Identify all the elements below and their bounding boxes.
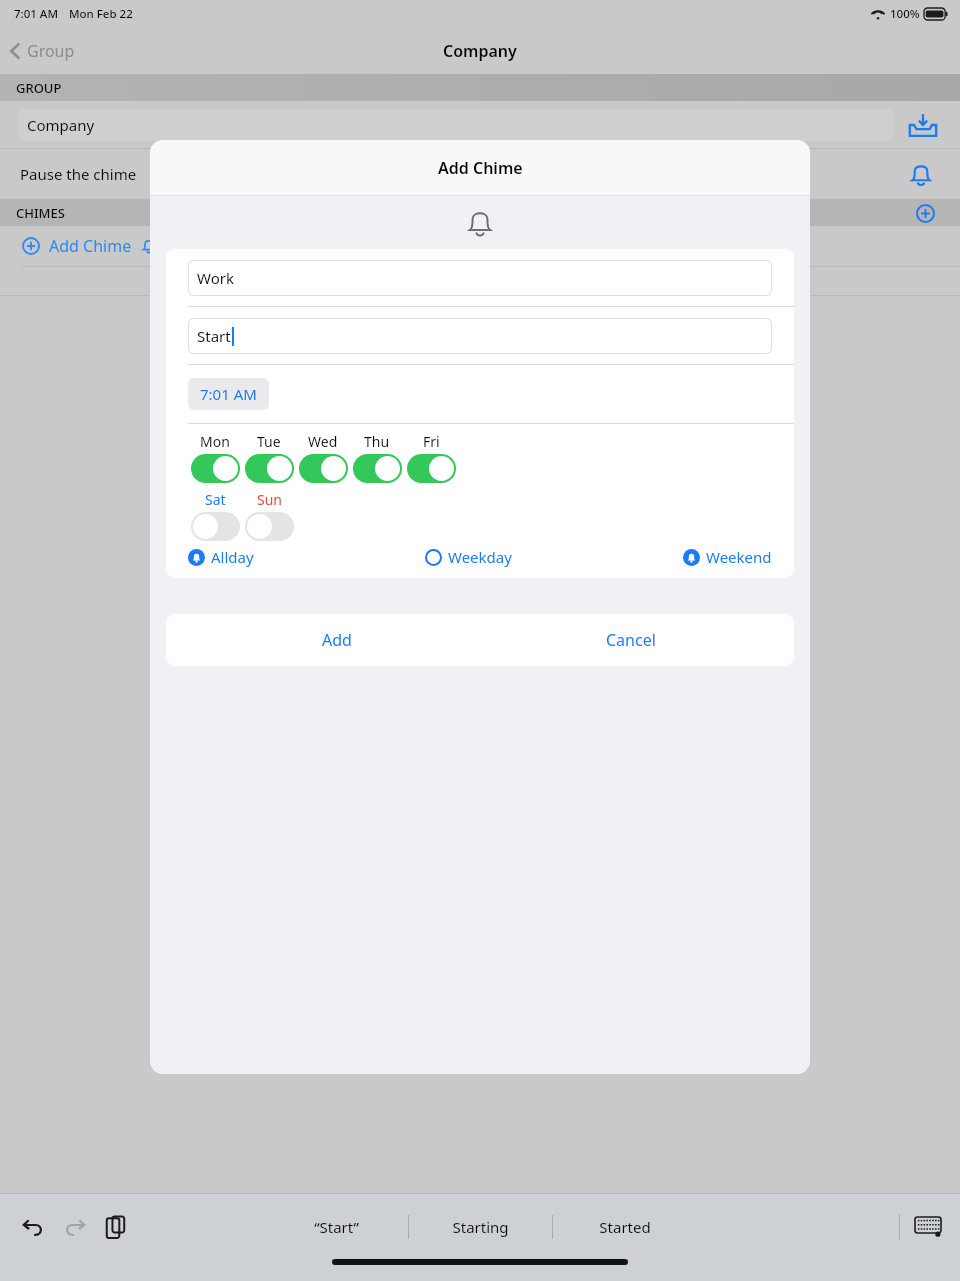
- button[interactable]: [191, 512, 240, 541]
- button[interactable]: Weekend: [683, 547, 772, 567]
- staticText: Weekday: [448, 547, 512, 567]
- staticText: Fri: [423, 432, 440, 451]
- button[interactable]: Group: [10, 40, 75, 62]
- staticText: Started: [599, 1217, 651, 1237]
- staticText: 7:01 AM: [200, 384, 257, 404]
- staticText: CHIMES: [16, 204, 65, 222]
- button[interactable]: [245, 512, 294, 541]
- staticText: Add Chime: [438, 157, 523, 179]
- staticText: 7:01 AM: [14, 6, 58, 22]
- staticText: Wed: [308, 432, 338, 451]
- button[interactable]: [353, 454, 402, 483]
- button[interactable]: Redo: [58, 1210, 92, 1244]
- button[interactable]: Archive: [906, 108, 940, 142]
- button[interactable]: Cancel: [480, 614, 794, 666]
- staticText: Tue: [257, 432, 281, 451]
- staticText: Start: [197, 326, 231, 346]
- button[interactable]: Add Chime: [22, 235, 156, 257]
- button[interactable]: Start: [188, 318, 772, 354]
- staticText: Company: [27, 115, 95, 135]
- staticText: Mon: [200, 432, 230, 451]
- button[interactable]: [407, 454, 456, 483]
- staticText: Thu: [364, 432, 390, 451]
- staticText: Starting: [452, 1217, 509, 1237]
- button[interactable]: Add: [912, 200, 938, 226]
- staticText: 100%: [890, 6, 920, 22]
- button[interactable]: [191, 454, 240, 483]
- staticText: “Start”: [314, 1217, 359, 1237]
- staticText: Pause the chime: [20, 164, 137, 184]
- staticText: Sat: [205, 490, 226, 509]
- button[interactable]: [299, 454, 348, 483]
- button[interactable]: Company: [18, 109, 894, 141]
- button[interactable]: “Start”: [265, 1207, 408, 1247]
- staticText: Cancel: [606, 629, 656, 651]
- button[interactable]: Work: [188, 260, 772, 296]
- staticText: Allday: [211, 547, 254, 567]
- staticText: Add: [322, 629, 352, 651]
- button[interactable]: [245, 454, 294, 483]
- staticText: Sun: [257, 490, 282, 509]
- staticText: GROUP: [16, 79, 62, 97]
- staticText: Work: [197, 268, 234, 288]
- button[interactable]: Weekday: [425, 547, 512, 567]
- button[interactable]: Add: [166, 614, 480, 666]
- button[interactable]: Undo: [16, 1210, 50, 1244]
- button[interactable]: Started: [553, 1207, 696, 1247]
- staticText: Add Chime: [49, 235, 132, 257]
- staticText: Weekend: [706, 547, 772, 567]
- button[interactable]: Chime: [904, 157, 938, 191]
- button[interactable]: 7:01 AM: [188, 378, 269, 410]
- staticText: Group: [27, 40, 75, 62]
- button[interactable]: Starting: [409, 1207, 552, 1247]
- button[interactable]: Pause the chime: [0, 149, 960, 199]
- button[interactable]: Paste: [98, 1210, 132, 1244]
- staticText: Company: [443, 40, 517, 62]
- staticText: Mon Feb 22: [69, 6, 133, 22]
- button[interactable]: Hide keyboard: [910, 1209, 946, 1245]
- button[interactable]: Allday: [188, 547, 254, 567]
